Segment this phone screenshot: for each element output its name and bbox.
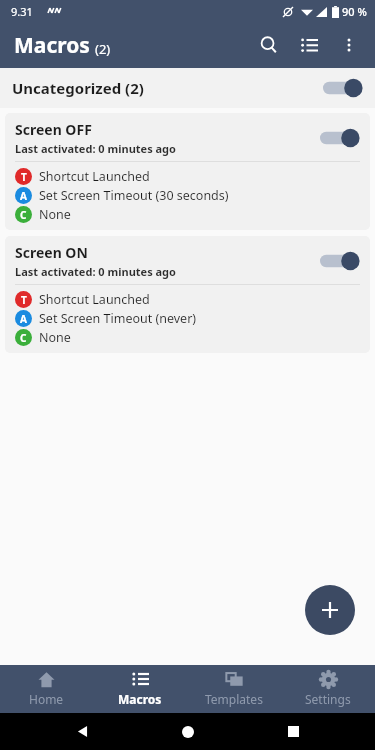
- button[interactable]: List view: [289, 25, 329, 65]
- button[interactable]: Uncategorized (2): [0, 68, 375, 108]
- button[interactable]: Search: [249, 25, 289, 65]
- staticText: A: [20, 189, 27, 203]
- button[interactable]: Home: [0, 665, 93, 713]
- staticText: T: [21, 170, 27, 184]
- staticText: Last activated: 0 minutes ago: [15, 264, 176, 279]
- button[interactable]: Add macro: [305, 585, 355, 635]
- staticText: (2): [95, 40, 111, 58]
- staticText: Screen ON: [15, 243, 88, 262]
- staticText: None: [39, 206, 71, 223]
- staticText: Set Screen Timeout (30 seconds): [39, 187, 229, 204]
- button[interactable]: Settings: [281, 665, 375, 713]
- staticText: 90 %: [342, 4, 367, 19]
- staticText: Macros: [14, 31, 90, 60]
- staticText: Home: [29, 691, 64, 707]
- staticText: 9.31: [11, 4, 33, 19]
- staticText: Screen OFF: [15, 120, 92, 139]
- staticText: Macros: [118, 691, 162, 707]
- staticText: Uncategorized (2): [12, 78, 321, 98]
- button[interactable]: Macros: [93, 665, 187, 713]
- button[interactable]: More options: [329, 25, 369, 65]
- staticText: C: [20, 331, 27, 345]
- staticText: A: [20, 312, 27, 326]
- staticText: Set Screen Timeout (never): [39, 310, 197, 327]
- button[interactable]: Templates: [187, 665, 281, 713]
- staticText: Shortcut Launched: [39, 168, 150, 185]
- staticText: Templates: [205, 691, 263, 707]
- button[interactable]: Screen OFF: [5, 113, 370, 230]
- staticText: T: [21, 293, 27, 307]
- staticText: None: [39, 329, 71, 346]
- staticText: C: [20, 208, 27, 222]
- staticText: Last activated: 0 minutes ago: [15, 141, 176, 156]
- staticText: Settings: [305, 691, 351, 707]
- staticText: Shortcut Launched: [39, 291, 150, 308]
- button[interactable]: Screen ON: [5, 236, 370, 353]
